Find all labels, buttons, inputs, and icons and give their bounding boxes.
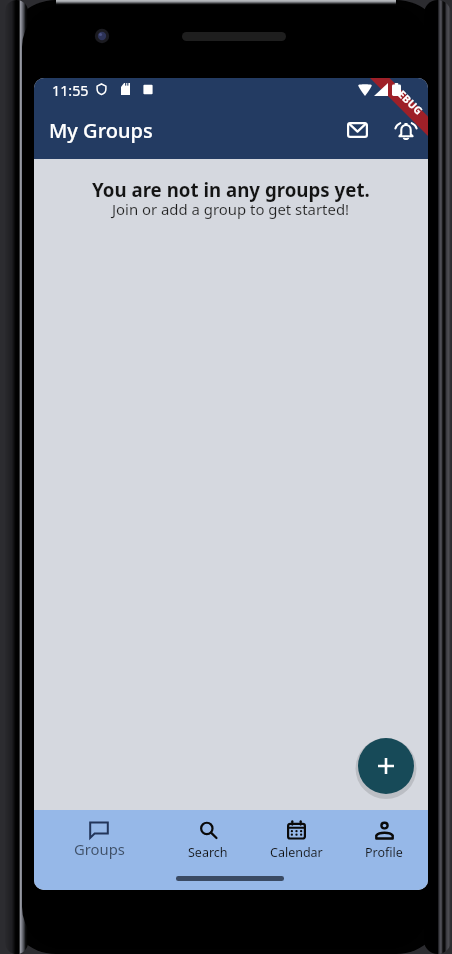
button[interactable]: Search [164, 810, 252, 890]
staticText: You are not in any groups yet. [92, 177, 370, 202]
staticText: 11:55 [52, 81, 89, 100]
staticText: Calendar [270, 844, 323, 861]
staticText: Profile [365, 844, 403, 861]
button[interactable]: Profile [340, 810, 428, 890]
button[interactable]: Calendar [252, 810, 340, 890]
button[interactable]: Notifications [383, 107, 428, 153]
staticText: Join or add a group to get started! [112, 199, 350, 219]
button[interactable]: Messages [337, 110, 377, 150]
staticText: Search [188, 844, 228, 861]
staticText: Groups [74, 839, 125, 859]
button[interactable]: Groups [34, 810, 164, 890]
staticText: DEBUG [390, 82, 426, 118]
staticText: My Groups [49, 117, 153, 144]
button[interactable]: Add a group [358, 738, 414, 794]
